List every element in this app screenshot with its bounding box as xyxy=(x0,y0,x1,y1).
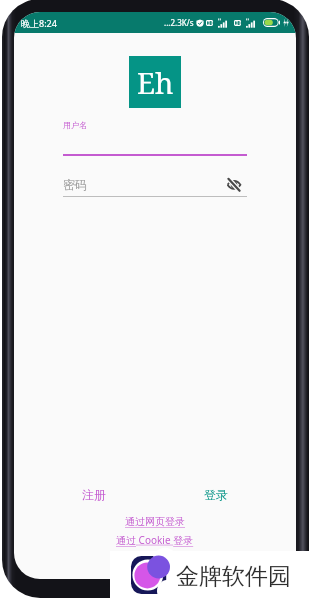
staticText: 登录 xyxy=(204,487,228,502)
button[interactable]: 注册 xyxy=(76,484,112,505)
staticText: Eh xyxy=(137,63,174,102)
staticText: 用户名 xyxy=(63,120,87,130)
other: Show password xyxy=(227,177,241,192)
staticText: 通过 Cookie 登录 xyxy=(116,533,194,547)
button[interactable]: 通过 Cookie 登录 xyxy=(114,531,196,549)
button[interactable]: 登录 xyxy=(198,484,234,505)
staticText: 密码 xyxy=(63,177,227,192)
staticText: 注册 xyxy=(82,487,106,502)
button[interactable]: 通过网页登录 xyxy=(123,513,187,530)
staticText: 晚上8:24 xyxy=(21,17,57,29)
staticText: 金牌软件园 xyxy=(176,562,291,591)
staticText: ...2.3K/s xyxy=(164,17,194,28)
staticText: 通过网页登录 xyxy=(125,515,185,528)
